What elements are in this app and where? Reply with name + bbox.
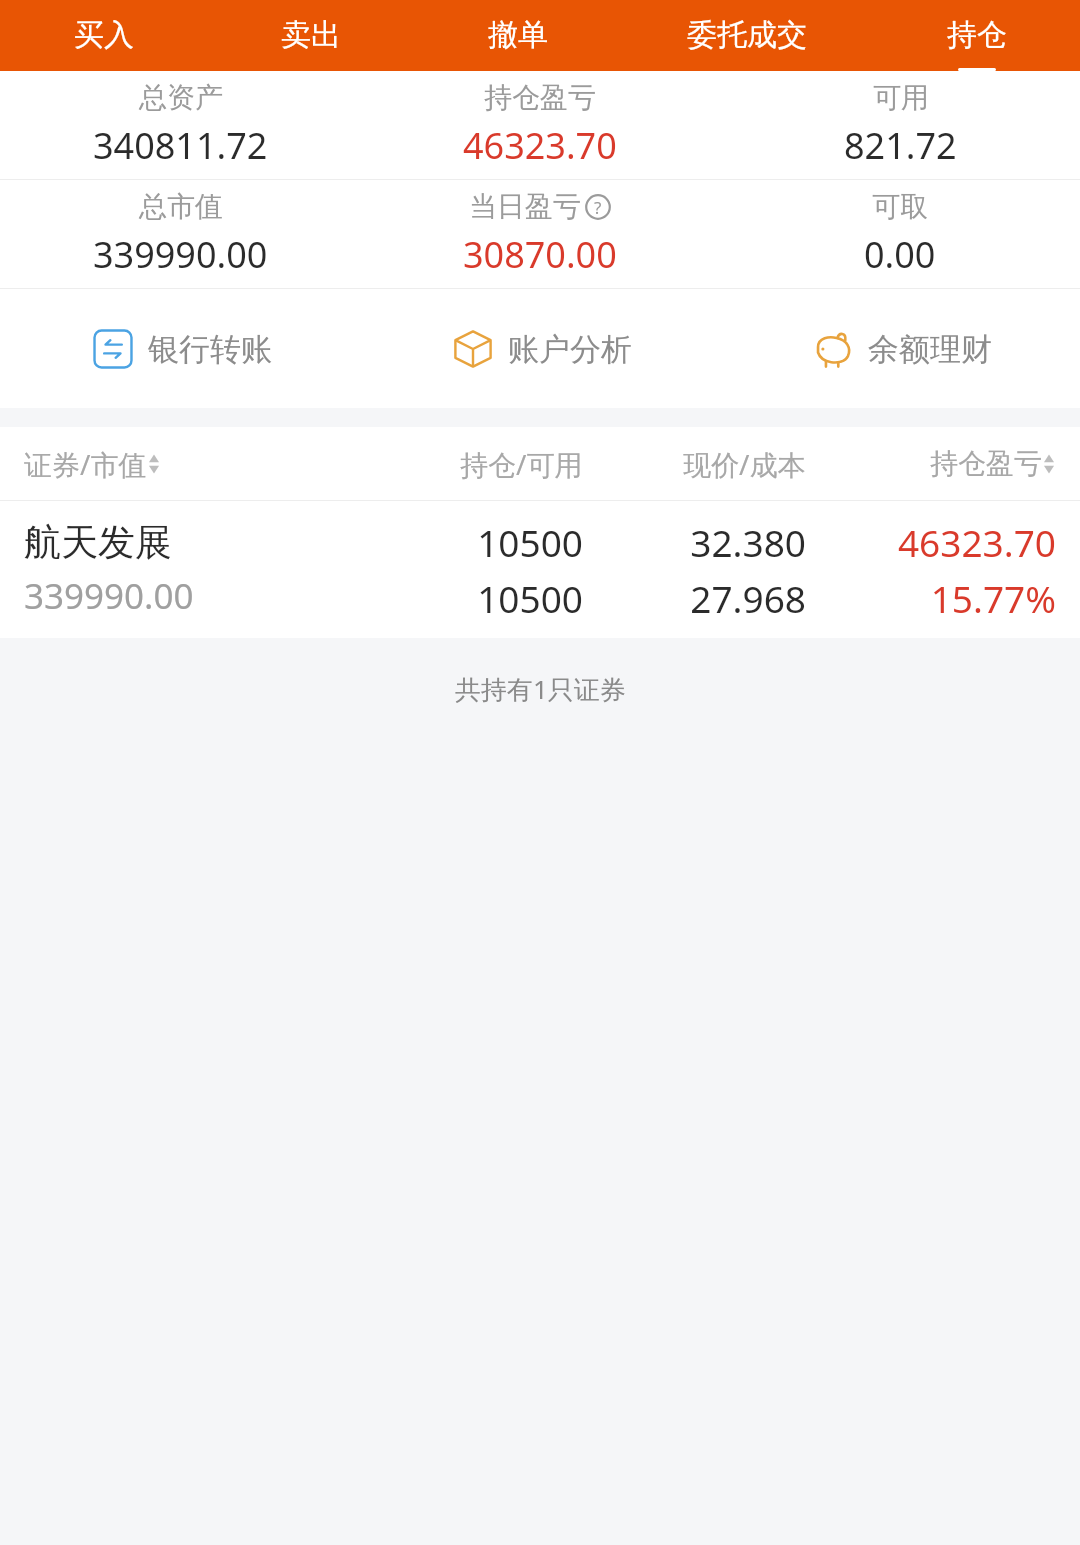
button[interactable]: 说明 (585, 194, 611, 220)
staticText: 撤单 (488, 16, 548, 54)
button[interactable]: 账户分析 (360, 289, 720, 408)
staticText: 可取 (872, 189, 928, 224)
button[interactable]: 买入 (0, 0, 207, 71)
staticText: 32.380 (690, 517, 806, 567)
button[interactable]: 银行转账 (0, 289, 360, 408)
staticText: 821.72 (844, 121, 957, 170)
button[interactable]: 撤单 (414, 0, 621, 71)
staticText: 0.00 (864, 230, 936, 279)
button[interactable]: 委托成交 (621, 0, 873, 71)
staticText: 证券/市值 (24, 445, 147, 483)
button[interactable]: 持仓/可用 (348, 445, 583, 483)
button[interactable]: 卖出 (207, 0, 414, 71)
staticText: 27.968 (690, 573, 806, 623)
button[interactable]: 航天发展 (0, 501, 1080, 638)
staticText: 46323.70 (897, 517, 1056, 567)
staticText: 可用 (873, 80, 929, 115)
staticText: 持仓盈亏 (930, 446, 1042, 481)
button[interactable]: 现价/成本 (583, 445, 806, 483)
staticText: 10500 (477, 517, 583, 567)
staticText: 10500 (477, 573, 583, 623)
staticText: 共持有1只证券 (455, 671, 626, 707)
staticText: 买入 (74, 16, 134, 54)
staticText: 339990.00 (24, 572, 194, 620)
staticText: 总市值 (139, 189, 223, 224)
staticText: 航天发展 (24, 519, 172, 566)
staticText: 30870.00 (463, 230, 617, 279)
staticText: 46323.70 (463, 121, 617, 170)
staticText: 卖出 (281, 16, 341, 54)
staticText: 总资产 (139, 80, 223, 115)
staticText: 15.77% (930, 573, 1056, 623)
staticText: 339990.00 (93, 230, 268, 279)
staticText: 持仓盈亏 (484, 80, 596, 115)
button[interactable]: 持仓 (873, 0, 1080, 71)
staticText: 银行转账 (148, 330, 272, 369)
staticText: 当日盈亏 (469, 189, 581, 224)
button[interactable]: 余额理财 (720, 289, 1080, 408)
button[interactable]: 证券/市值 (24, 445, 348, 483)
staticText: 340811.72 (93, 121, 268, 170)
staticText: 委托成交 (687, 16, 807, 54)
button[interactable]: 持仓盈亏 (806, 446, 1056, 481)
staticText: 现价/成本 (683, 445, 806, 483)
staticText: ? (594, 196, 602, 219)
staticText: 余额理财 (868, 330, 992, 369)
staticText: 账户分析 (508, 330, 632, 369)
staticText: 持仓/可用 (460, 445, 583, 483)
staticText: 持仓 (947, 16, 1007, 54)
